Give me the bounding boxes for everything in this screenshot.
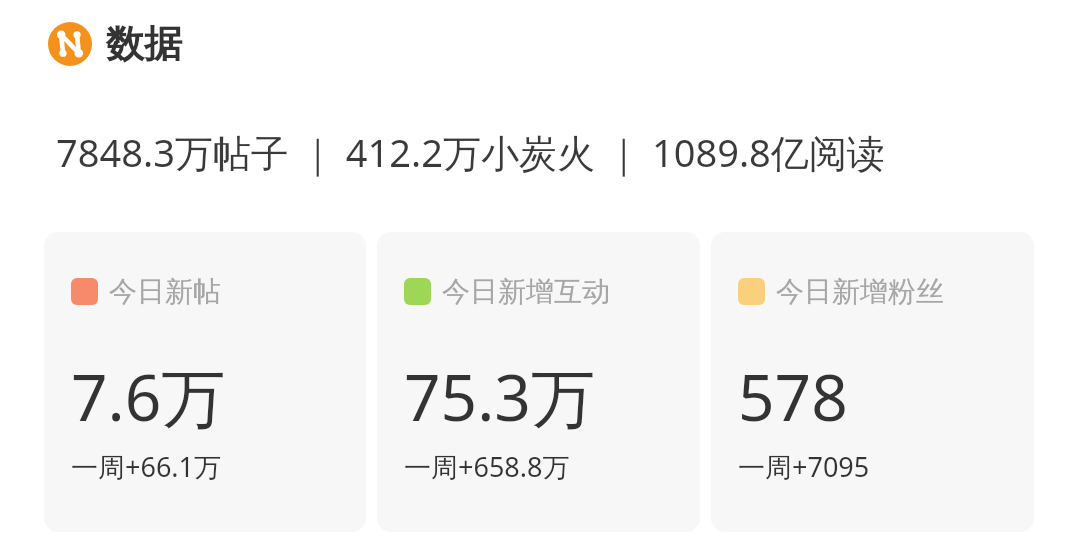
staticText: 一周+66.1万 [71, 448, 222, 485]
button[interactable]: App logo [48, 20, 182, 68]
staticText: 今日新帖 [109, 274, 221, 309]
staticText: 7.6万 [71, 353, 226, 440]
other: App logo [48, 22, 92, 66]
staticText: 一周+7095 [738, 448, 870, 485]
staticText: 75.3万 [404, 353, 595, 440]
button[interactable]: 今日新帖 [44, 232, 366, 532]
staticText: 一周+658.8万 [404, 448, 570, 485]
button[interactable]: 今日新增互动 [377, 232, 700, 532]
button[interactable]: 今日新增粉丝 [711, 232, 1034, 532]
staticText: 数据 [106, 20, 182, 68]
staticText: 578 [738, 353, 848, 440]
staticText: 7848.3万帖子 ｜ 412.2万小炭火 ｜ 1089.8亿阅读 [56, 126, 885, 178]
staticText: 今日新增粉丝 [776, 274, 944, 309]
staticText: 今日新增互动 [442, 274, 610, 309]
